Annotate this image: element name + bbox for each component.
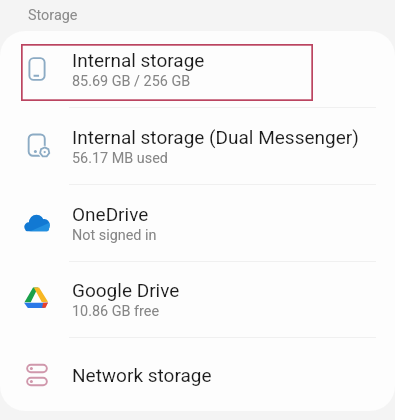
button[interactable]: Internal storage (Dual Messenger) — [0, 108, 395, 184]
staticText: Storage — [28, 7, 78, 24]
staticText: 10.86 GB free — [72, 303, 160, 320]
button[interactable]: OneDrive — [0, 185, 395, 261]
button[interactable]: Google Drive — [0, 262, 395, 337]
staticText: Internal storage — [72, 49, 205, 71]
staticText: Not signed in — [72, 227, 157, 244]
staticText: OneDrive — [72, 203, 149, 225]
staticText: 56.17 MB used — [72, 150, 168, 167]
staticText: Internal storage (Dual Messenger) — [72, 126, 359, 148]
staticText: Google Drive — [72, 279, 180, 301]
staticText: Network storage — [72, 364, 212, 386]
button[interactable]: Internal storage — [0, 31, 395, 107]
staticText: 85.69 GB / 256 GB — [72, 73, 191, 90]
button[interactable]: Network storage — [0, 338, 395, 411]
